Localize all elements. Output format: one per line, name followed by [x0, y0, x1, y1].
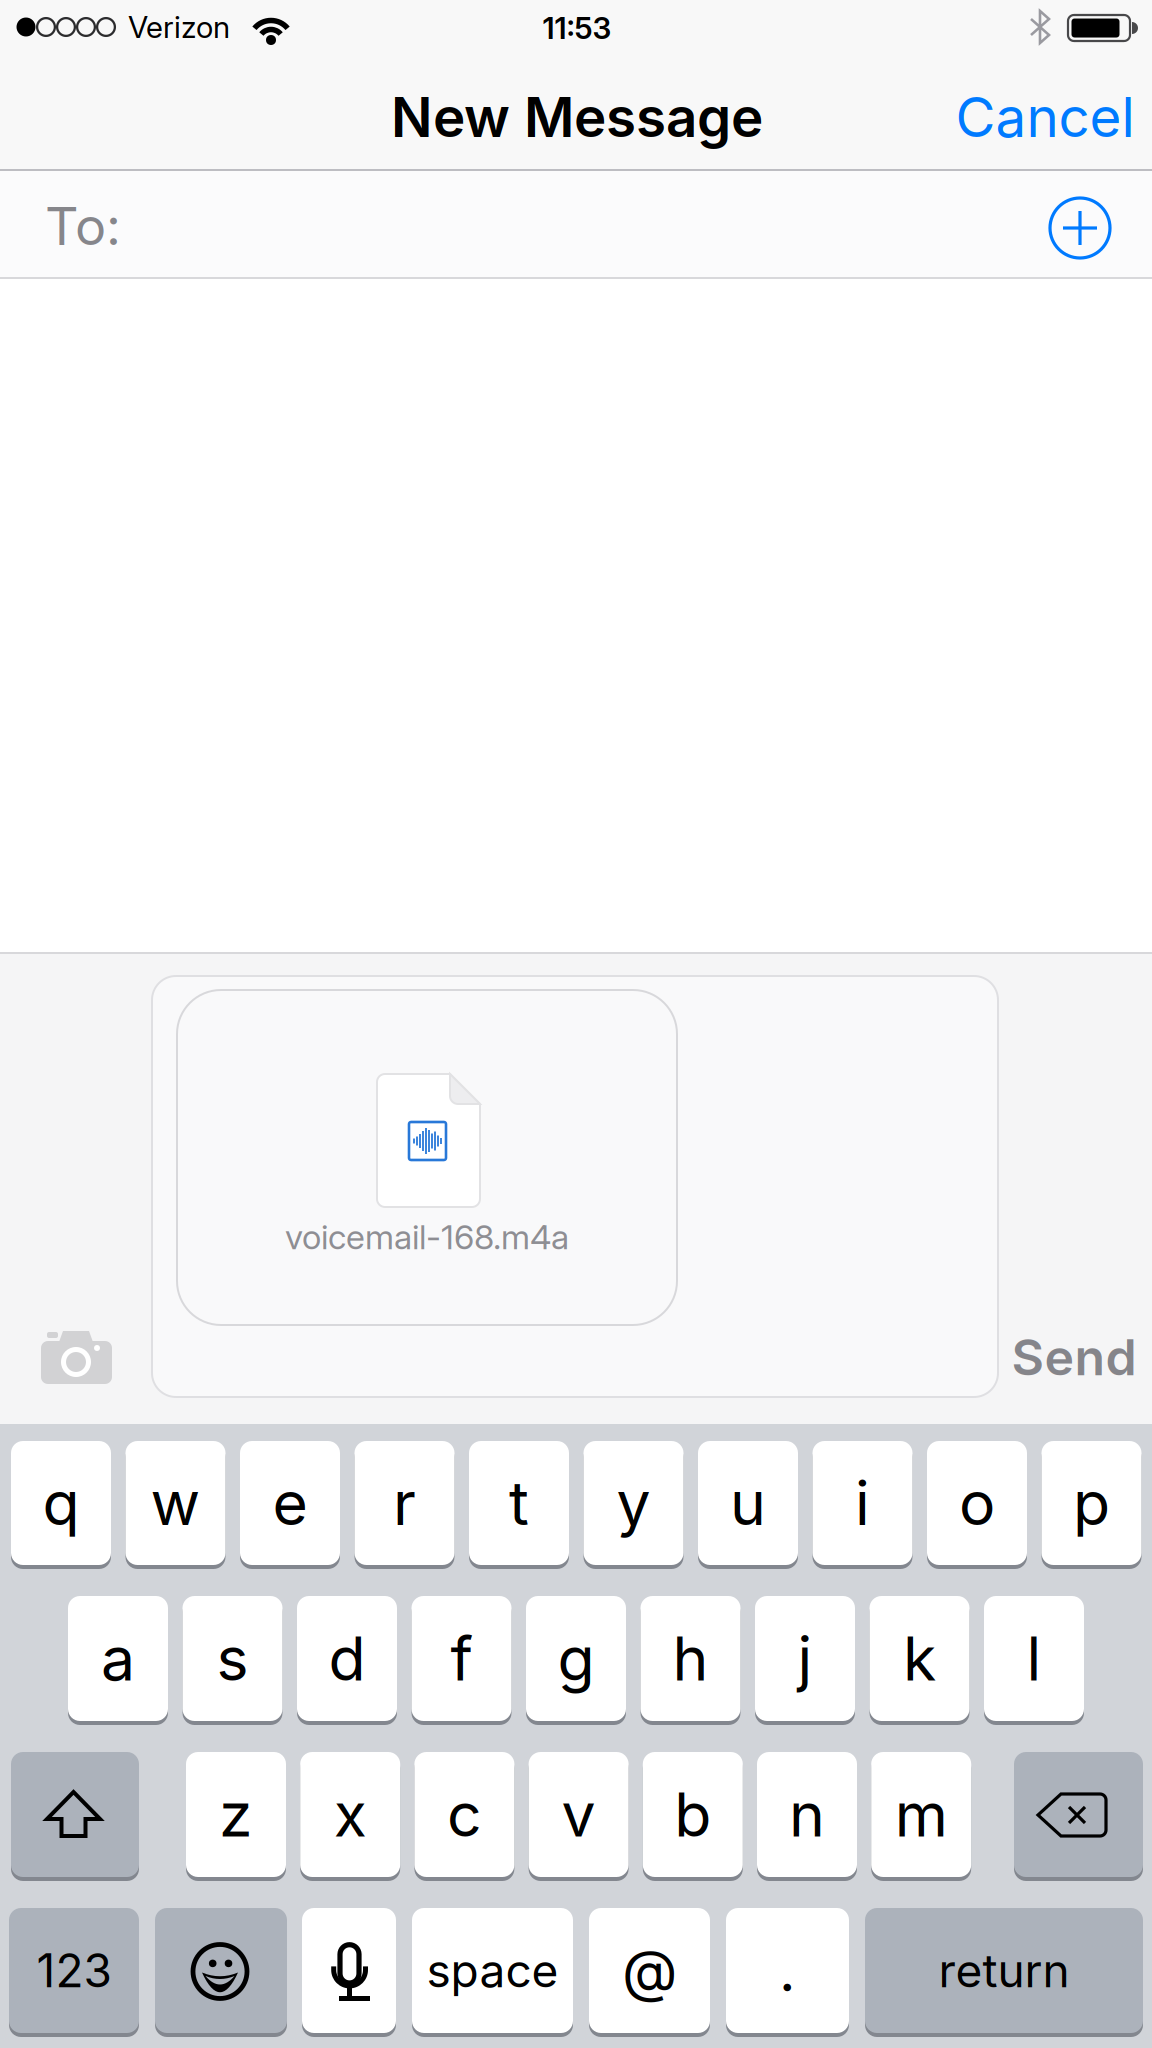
- staticText: 11:53: [542, 10, 611, 46]
- staticText: o: [959, 1466, 995, 1540]
- staticText: h: [672, 1622, 708, 1695]
- staticText: space: [426, 1943, 558, 1998]
- staticText: k: [903, 1622, 936, 1695]
- staticText: z: [219, 1778, 253, 1851]
- staticText: To:: [45, 194, 121, 257]
- staticText: Verizon: [128, 9, 230, 45]
- staticText: return: [938, 1943, 1069, 1998]
- staticText: New Message: [391, 84, 763, 150]
- staticText: g: [557, 1622, 594, 1695]
- staticText: d: [328, 1622, 365, 1695]
- staticText: u: [730, 1466, 766, 1540]
- staticText: @: [622, 1936, 677, 2005]
- staticText: .: [779, 1936, 796, 2005]
- staticText: 123: [36, 1943, 111, 1998]
- staticText: e: [272, 1466, 307, 1540]
- staticText: b: [674, 1778, 711, 1851]
- staticText: j: [797, 1622, 812, 1695]
- staticText: l: [1026, 1622, 1041, 1695]
- staticText: voicemail-168.m4a: [285, 1216, 569, 1257]
- staticText: v: [562, 1778, 596, 1851]
- staticText: f: [450, 1622, 472, 1695]
- staticText: m: [895, 1778, 948, 1851]
- staticText: t: [509, 1466, 529, 1540]
- staticText: x: [334, 1778, 367, 1851]
- staticText: i: [855, 1466, 870, 1540]
- staticText: q: [42, 1466, 79, 1540]
- staticText: n: [789, 1778, 825, 1851]
- staticText: c: [447, 1778, 482, 1851]
- staticText: w: [150, 1466, 200, 1540]
- staticText: y: [616, 1466, 650, 1540]
- staticText: a: [101, 1622, 135, 1695]
- staticText: r: [393, 1466, 416, 1540]
- staticText: Cancel: [955, 84, 1134, 150]
- staticText: p: [1073, 1466, 1110, 1540]
- staticText: s: [216, 1622, 248, 1695]
- staticText: Send: [1011, 1327, 1136, 1387]
